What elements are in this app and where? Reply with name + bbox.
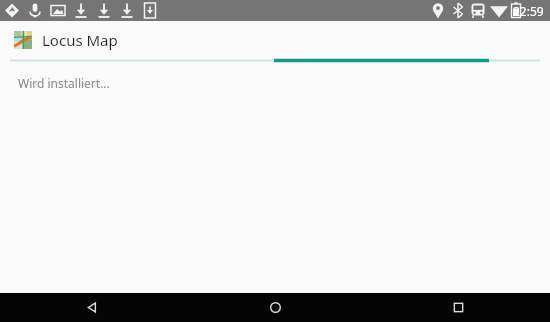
staticText: 22:59: [513, 3, 544, 19]
button[interactable]: Home: [184, 293, 367, 322]
staticText: Wird installiert...: [18, 75, 110, 91]
button[interactable]: Locus Map icon: [0, 21, 550, 58]
button[interactable]: Recent apps: [367, 293, 550, 322]
staticText: Locus Map: [42, 30, 118, 50]
button[interactable]: Back: [0, 293, 184, 322]
other: Locus Map icon: [14, 31, 32, 49]
